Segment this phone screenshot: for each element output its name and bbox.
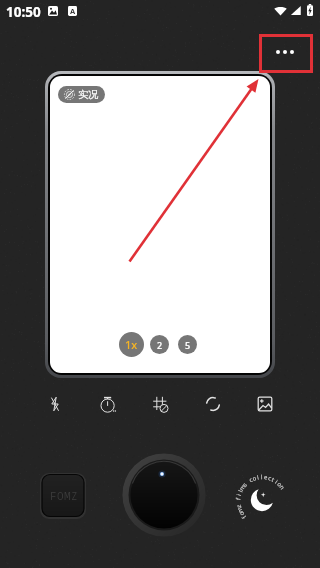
button[interactable]: 实况 <box>58 86 105 103</box>
button[interactable]: FOMZ filters <box>38 471 88 521</box>
staticText: A <box>70 6 76 16</box>
staticText: 10:50 <box>6 3 41 21</box>
staticText: 实况 <box>78 88 98 101</box>
button[interactable]: Gallery <box>250 389 280 419</box>
button[interactable]: Grid off <box>145 389 175 419</box>
button[interactable]: Shutter <box>122 453 206 537</box>
button[interactable]: 1x <box>119 332 144 357</box>
button[interactable]: fomz films collection <box>231 468 293 530</box>
staticText: 5 <box>185 339 191 351</box>
staticText: FOMZ <box>50 488 78 503</box>
button[interactable]: Timer <box>93 389 123 419</box>
button[interactable]: Flash off <box>40 389 70 419</box>
staticText: 2 <box>157 339 163 351</box>
button[interactable]: 5 <box>178 335 197 354</box>
button[interactable]: Switch camera <box>198 389 228 419</box>
button[interactable]: 2 <box>150 335 169 354</box>
button[interactable]: More options <box>259 34 313 73</box>
staticText: 1x <box>125 337 138 352</box>
